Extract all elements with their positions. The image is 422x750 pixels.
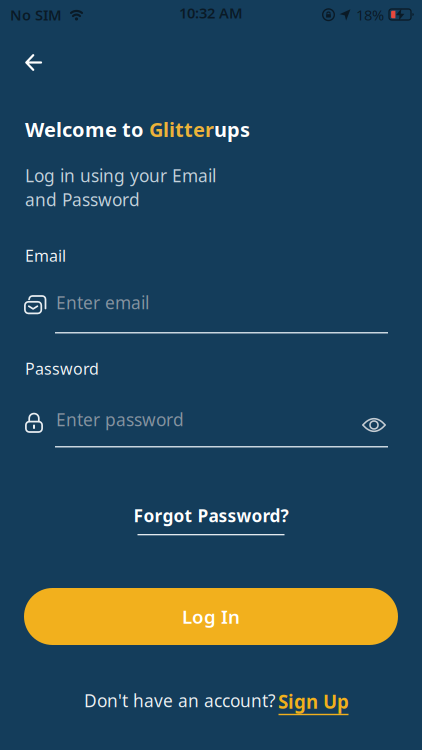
button[interactable]: [362, 417, 386, 433]
staticText: Log in using your Email and Password: [25, 164, 216, 211]
staticText: Glitter: [149, 116, 214, 143]
staticText: Welcome to: [25, 116, 149, 143]
staticText: Enter email: [56, 291, 149, 314]
staticText: Log In: [182, 604, 240, 629]
staticText: Sign Up: [278, 689, 349, 714]
button[interactable]: [25, 54, 42, 71]
button[interactable]: Log In: [24, 588, 398, 645]
staticText: No SIM: [10, 5, 62, 24]
staticText: Forgot Password?: [133, 504, 288, 527]
staticText: Don't have an account?: [84, 689, 276, 712]
staticText: 10:32 AM: [179, 3, 243, 22]
staticText: 18%: [356, 5, 384, 24]
button[interactable]: Forgot Password?: [133, 504, 288, 535]
staticText: ups: [214, 116, 250, 143]
button[interactable]: Enter password: [25, 408, 388, 448]
staticText: Password: [25, 358, 99, 379]
button[interactable]: Enter email: [24, 291, 388, 334]
staticText: Email: [25, 245, 66, 266]
staticText: Enter password: [56, 408, 184, 431]
button[interactable]: Sign Up: [278, 689, 349, 715]
